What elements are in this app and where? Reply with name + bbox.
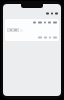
button[interactable]: Action — [5, 19, 59, 41]
button[interactable]: Action — [7, 28, 19, 32]
